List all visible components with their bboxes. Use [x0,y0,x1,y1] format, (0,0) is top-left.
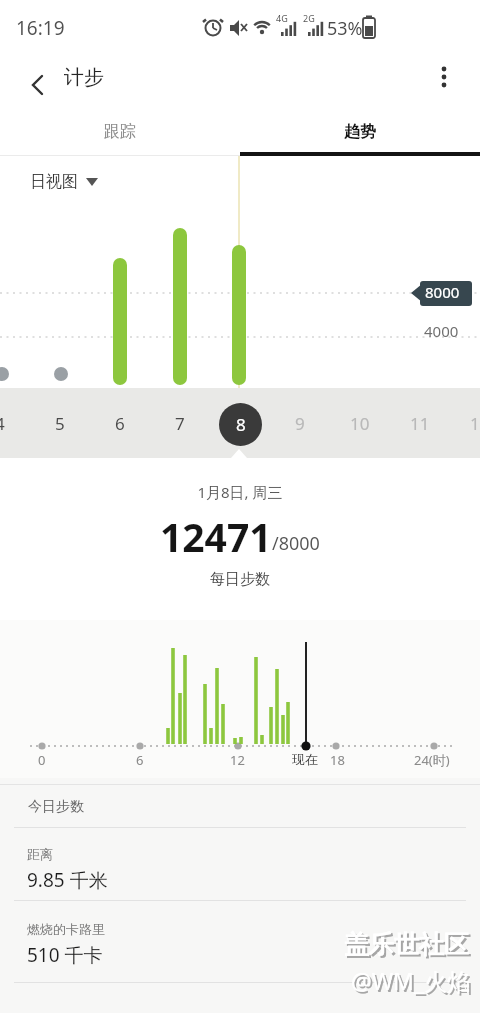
staticText: 10 [350,412,370,435]
staticText: 8000 [425,282,460,302]
staticText: 9 [295,412,305,435]
button[interactable]: 7 [160,388,200,458]
staticText: 5 [55,412,65,435]
staticText: 24(时) [414,751,450,769]
staticText: 盖乐世社区 [344,929,469,960]
staticText: 盖乐世社区 [346,931,471,962]
button[interactable]: 趋势 [240,108,480,156]
staticText: 6 [136,751,144,769]
staticText: @WM_火焰 [351,965,471,996]
staticText: 510 千卡 [27,942,103,968]
staticText: 跟踪 [104,122,136,142]
staticText: 16:19 [16,15,65,41]
staticText: 燃烧的卡路里 [27,921,105,937]
staticText: 趋势 [344,122,376,142]
staticText: 1月8日, 周三 [0,482,480,502]
button[interactable]: 11 [400,388,440,458]
staticText: 今日步数 [28,798,84,816]
staticText: 每日步数 [0,570,480,589]
button[interactable]: 12 [460,388,480,458]
staticText: 11 [410,412,430,435]
button[interactable] [16,65,56,105]
staticText: 现在 [292,751,318,767]
staticText: 12 [230,751,245,769]
staticText: 4 [0,412,5,435]
staticText: 53% [327,16,363,41]
staticText: 2G [303,12,315,24]
staticText: /8000 [272,531,320,556]
staticText: 18 [330,751,345,769]
staticText: 8 [236,413,246,436]
button[interactable]: 6 [100,388,140,458]
staticText: 计步 [64,65,104,90]
staticText: @WM_火焰 [353,967,473,998]
button[interactable]: 跟踪 [0,108,240,156]
staticText: 4G [276,12,288,24]
button[interactable]: 8 [219,403,262,446]
button[interactable] [424,57,464,97]
button[interactable]: 9 [280,388,320,458]
button[interactable]: 燃烧的卡路里 [27,921,427,968]
staticText: 6 [115,412,125,435]
staticText: 12471 [160,510,272,563]
button[interactable]: 10 [340,388,380,458]
staticText: 0 [38,751,46,769]
staticText: 12 [470,412,480,435]
button[interactable]: 4 [0,388,20,458]
staticText: 4000 [424,321,459,341]
button[interactable]: 5 [40,388,80,458]
staticText: 距离 [27,846,53,862]
button[interactable]: 距离 [27,846,427,893]
button[interactable]: 日视图 [30,172,98,192]
staticText: 9.85 千米 [27,867,108,893]
staticText: 日视图 [30,172,78,192]
staticText: 7 [175,412,185,435]
